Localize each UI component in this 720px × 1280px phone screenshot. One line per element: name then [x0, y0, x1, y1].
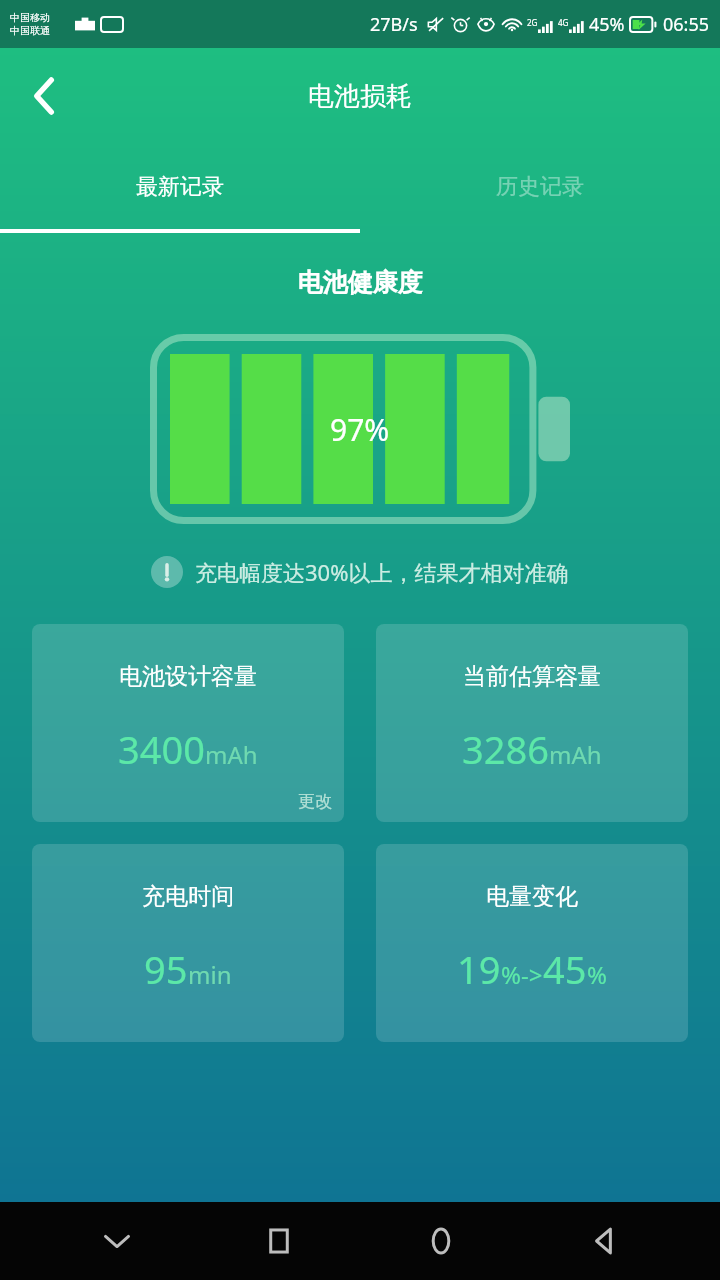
staticText: 3400	[118, 723, 205, 775]
button[interactable]: Recents	[234, 1202, 324, 1280]
staticText: 充电幅度达30%以上，结果才相对准确	[195, 557, 569, 587]
button[interactable]: 历史记录	[360, 144, 720, 229]
staticText: 2G	[527, 17, 538, 28]
staticText: 当前估算容量	[463, 662, 601, 691]
staticText: 电池损耗	[308, 80, 412, 113]
button[interactable]: Home	[396, 1202, 486, 1280]
staticText: 最新记录	[136, 173, 224, 201]
staticText: 中国移动	[10, 11, 50, 24]
staticText: 45	[543, 943, 587, 995]
staticText: mAh	[205, 738, 258, 771]
button[interactable]: 充电时间	[32, 844, 344, 1042]
staticText: min	[188, 958, 232, 991]
staticText: 中国联通	[10, 24, 50, 37]
staticText: 充电时间	[142, 882, 234, 911]
staticText: 45%	[589, 12, 625, 37]
button[interactable]: 最新记录	[0, 144, 360, 229]
staticText: %	[587, 958, 607, 991]
staticText: 更改	[298, 791, 332, 812]
staticText: 06:55	[663, 12, 710, 37]
staticText: %->	[501, 958, 543, 991]
button[interactable]: Back	[12, 64, 76, 128]
button[interactable]: Hide keyboard	[72, 1202, 162, 1280]
staticText: 4G	[558, 17, 569, 28]
staticText: mAh	[549, 738, 602, 771]
staticText: 历史记录	[496, 173, 584, 201]
button[interactable]: 电池设计容量	[32, 624, 344, 822]
button[interactable]: Back	[558, 1202, 648, 1280]
staticText: 3286	[462, 723, 549, 775]
staticText: 95	[144, 943, 188, 995]
staticText: 电量变化	[486, 882, 578, 911]
staticText: 电池健康度	[0, 267, 720, 298]
button[interactable]: 当前估算容量	[376, 624, 688, 822]
staticText: 电池设计容量	[119, 662, 257, 691]
staticText: 27B/s	[370, 12, 418, 37]
button[interactable]: 电量变化	[376, 844, 688, 1042]
staticText: 97%	[330, 409, 390, 450]
staticText: 19	[457, 943, 501, 995]
